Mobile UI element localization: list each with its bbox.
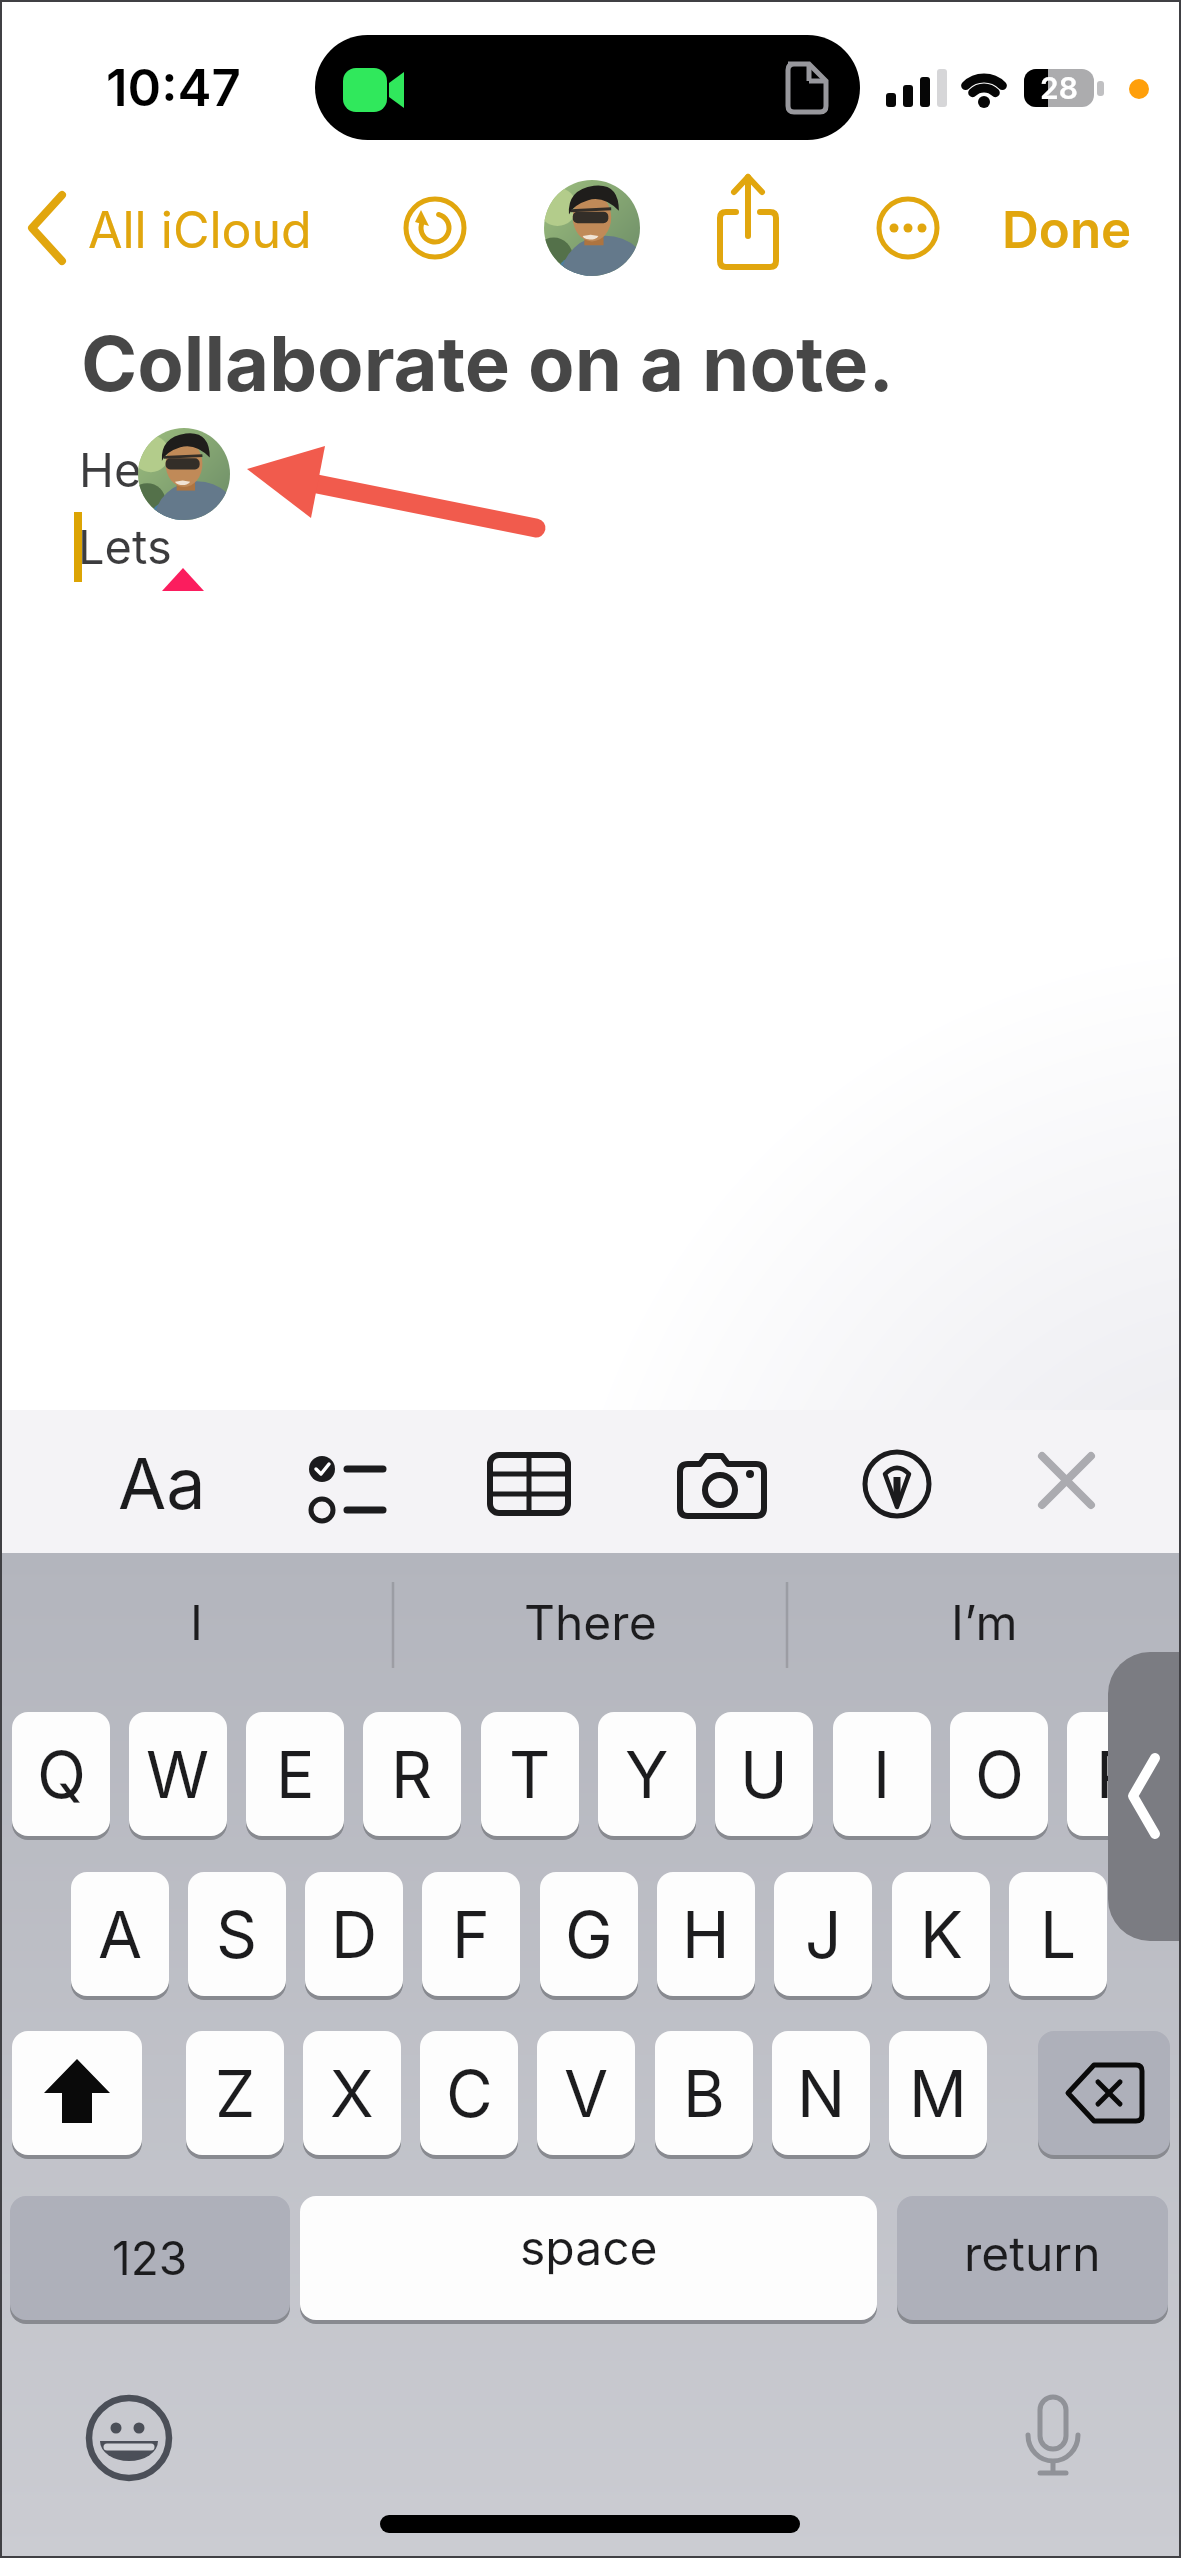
button[interactable]: W <box>129 1712 227 1836</box>
button[interactable] <box>1108 1652 1181 1941</box>
button[interactable]: I <box>0 1574 393 1669</box>
button[interactable]: All iCloud <box>20 185 390 275</box>
staticText: O <box>975 1736 1024 1813</box>
staticText: N <box>797 2055 846 2132</box>
staticText: return <box>964 2224 1101 2282</box>
staticText: 123 <box>112 2230 188 2286</box>
staticText: A <box>98 1896 143 1973</box>
staticText: Q <box>37 1736 86 1813</box>
button[interactable] <box>1014 2393 1094 2483</box>
staticText: S <box>216 1896 258 1973</box>
staticText: D <box>331 1896 378 1973</box>
button[interactable]: K <box>892 1872 990 1996</box>
staticText: B <box>683 2055 725 2132</box>
staticText: M <box>909 2055 967 2132</box>
staticText: All iCloud <box>88 200 312 260</box>
button[interactable]: L <box>1009 1872 1107 1996</box>
button[interactable]: return <box>897 2196 1168 2320</box>
staticText: H <box>682 1896 730 1973</box>
staticText: space <box>520 2218 658 2276</box>
button[interactable]: A <box>71 1872 169 1996</box>
staticText: V <box>564 2055 609 2132</box>
button[interactable]: I <box>833 1712 931 1836</box>
staticText: Y <box>625 1736 669 1813</box>
button[interactable]: B <box>655 2031 753 2155</box>
staticText: There <box>524 1593 657 1651</box>
button[interactable] <box>714 172 782 272</box>
button[interactable]: G <box>540 1872 638 1996</box>
staticText: I’m <box>951 1593 1018 1651</box>
button[interactable] <box>1038 2031 1170 2155</box>
button[interactable]: F <box>422 1872 520 1996</box>
button[interactable]: Z <box>186 2031 284 2155</box>
button[interactable]: There <box>394 1574 787 1669</box>
button[interactable] <box>295 1440 395 1530</box>
staticText: F <box>452 1896 490 1973</box>
button[interactable]: Q <box>12 1712 110 1836</box>
button[interactable] <box>678 1448 768 1520</box>
button[interactable]: U <box>715 1712 813 1836</box>
staticText: He <box>79 441 142 498</box>
staticText: Done <box>1002 199 1132 261</box>
button[interactable]: E <box>246 1712 344 1836</box>
staticText: C <box>446 2055 493 2132</box>
button[interactable]: space <box>300 2196 877 2320</box>
button[interactable]: X <box>303 2031 401 2155</box>
staticText: I <box>873 1736 891 1813</box>
button[interactable]: T <box>481 1712 579 1836</box>
button[interactable]: V <box>537 2031 635 2155</box>
staticText: X <box>330 2055 374 2132</box>
staticText: G <box>565 1896 613 1973</box>
staticText: Lets <box>78 518 172 575</box>
staticText: 28 <box>1040 70 1078 106</box>
button[interactable]: 123 <box>10 2196 290 2320</box>
staticText: U <box>740 1736 788 1813</box>
staticText: Collaborate on a note. <box>81 317 894 409</box>
staticText: L <box>1040 1896 1077 1973</box>
staticText: J <box>805 1896 842 1973</box>
staticText: Aa <box>118 1441 206 1526</box>
button[interactable]: H <box>657 1872 755 1996</box>
button[interactable] <box>138 428 230 520</box>
button[interactable]: Done <box>940 190 1132 270</box>
button[interactable] <box>12 2031 142 2155</box>
button[interactable]: O <box>950 1712 1048 1836</box>
button[interactable]: J <box>774 1872 872 1996</box>
staticText: E <box>276 1736 315 1813</box>
staticText: 10:47 <box>106 57 241 119</box>
button[interactable] <box>84 2393 174 2483</box>
staticText: R <box>391 1736 433 1813</box>
button[interactable] <box>862 1449 932 1519</box>
staticText: Z <box>215 2055 256 2132</box>
button[interactable]: I’m <box>788 1574 1181 1669</box>
button[interactable] <box>1026 1442 1106 1522</box>
button[interactable]: D <box>305 1872 403 1996</box>
staticText: K <box>920 1896 963 1973</box>
staticText: W <box>146 1736 210 1813</box>
button[interactable]: M <box>889 2031 987 2155</box>
button[interactable]: P <box>1067 1712 1165 1836</box>
staticText: P <box>1096 1736 1137 1813</box>
button[interactable]: N <box>772 2031 870 2155</box>
button[interactable]: C <box>420 2031 518 2155</box>
button[interactable] <box>403 196 467 260</box>
staticText: I <box>190 1593 203 1651</box>
button[interactable]: S <box>188 1872 286 1996</box>
button[interactable] <box>544 180 640 276</box>
button[interactable]: Aa <box>102 1430 222 1536</box>
button[interactable] <box>876 196 940 260</box>
button[interactable]: Y <box>598 1712 696 1836</box>
staticText: T <box>509 1736 551 1813</box>
button[interactable]: R <box>363 1712 461 1836</box>
button[interactable] <box>487 1452 571 1516</box>
